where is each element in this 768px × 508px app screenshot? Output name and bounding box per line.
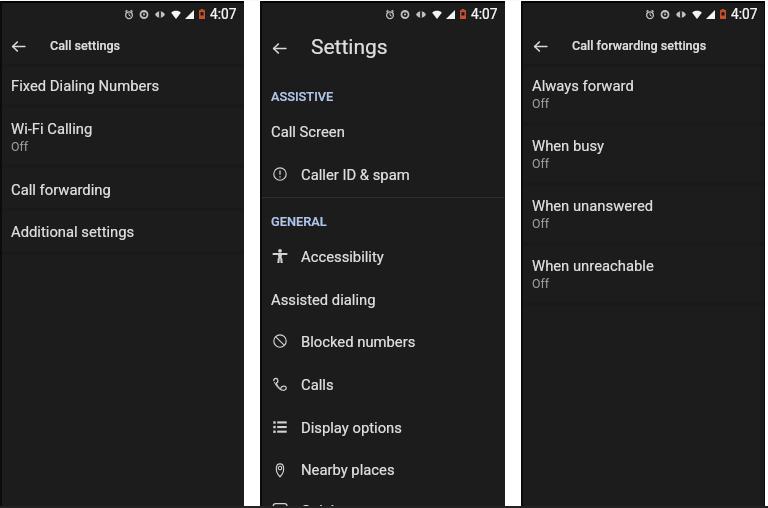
staticText: Off (532, 156, 550, 171)
staticText: Nearby places (301, 461, 395, 478)
staticText: 4:07 (731, 6, 758, 22)
staticText: Call forwarding (11, 181, 111, 198)
button[interactable]: Call Screen (260, 112, 505, 150)
staticText: Call Screen (271, 123, 345, 140)
button[interactable]: Navigate up (529, 35, 552, 58)
staticText: Off (532, 216, 550, 231)
staticText: Settings (311, 35, 388, 60)
button[interactable]: When unreachable (521, 249, 765, 308)
staticText: Call settings (50, 38, 121, 53)
staticText: Calls (301, 376, 334, 393)
button[interactable]: Call forwarding (0, 169, 244, 211)
button[interactable]: Quick responses (260, 494, 505, 508)
button[interactable]: Display options (260, 409, 505, 452)
staticText: 4:07 (471, 6, 498, 22)
button[interactable]: Assisted dialing (260, 281, 505, 324)
staticText: 4:07 (210, 6, 237, 22)
staticText: Additional settings (11, 223, 135, 240)
staticText: GENERAL (271, 214, 327, 229)
button[interactable]: When busy (521, 129, 765, 188)
button[interactable]: Always forward (521, 66, 765, 127)
button[interactable]: Blocked numbers (260, 323, 505, 366)
button[interactable]: Wi-Fi Calling (0, 109, 244, 169)
staticText: Caller ID & spam (301, 166, 410, 183)
staticText: Off (532, 276, 550, 291)
staticText: Accessibility (301, 248, 384, 265)
staticText: When unanswered (532, 197, 654, 214)
staticText: Fixed Dialing Numbers (11, 77, 160, 94)
button[interactable]: Nearby places (260, 452, 505, 495)
staticText: ASSISTIVE (271, 89, 334, 104)
staticText: Blocked numbers (301, 333, 416, 350)
staticText: Quick responses (301, 502, 411, 508)
button[interactable]: Navigate up (268, 37, 291, 60)
button[interactable]: Additional settings (0, 211, 244, 255)
button[interactable]: Accessibility (260, 238, 505, 281)
button[interactable]: Calls (260, 366, 505, 409)
staticText: Off (532, 96, 550, 111)
staticText: Off (11, 139, 29, 154)
button[interactable]: When unanswered (521, 189, 765, 248)
staticText: Call forwarding settings (572, 38, 707, 53)
button[interactable]: Fixed Dialing Numbers (0, 66, 244, 108)
staticText: Display options (301, 419, 402, 436)
button[interactable]: Navigate up (7, 35, 30, 58)
staticText: When busy (532, 137, 605, 154)
staticText: Wi-Fi Calling (11, 120, 93, 137)
staticText: Always forward (532, 77, 634, 94)
button[interactable]: Caller ID & spam (260, 154, 505, 196)
staticText: Assisted dialing (271, 291, 376, 308)
staticText: When unreachable (532, 257, 654, 274)
